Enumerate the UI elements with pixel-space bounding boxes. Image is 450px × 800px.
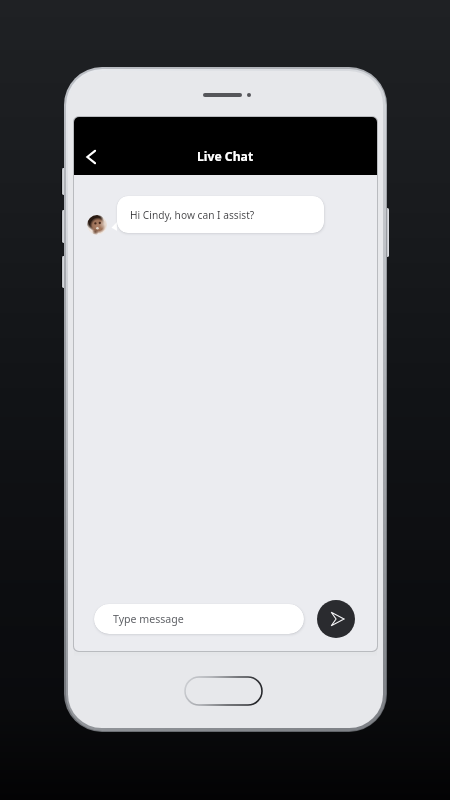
staticText: Hi Cindy, how can I assist? xyxy=(130,208,255,222)
button[interactable]: Type message xyxy=(94,604,304,634)
staticText: Type message xyxy=(113,612,184,626)
button[interactable]: Back xyxy=(74,137,111,177)
button[interactable]: Hi Cindy, how can I assist? xyxy=(117,196,324,233)
staticText: Live Chat xyxy=(197,148,254,165)
button[interactable]: Send xyxy=(317,600,355,638)
